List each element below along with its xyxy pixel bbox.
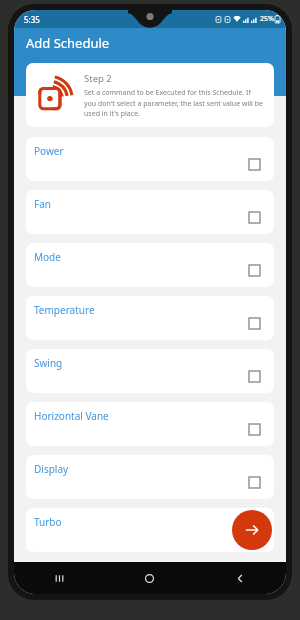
- button[interactable]: Horizontal Vane checkbox: [245, 420, 263, 438]
- button[interactable]: Horizontal Vane: [26, 402, 274, 446]
- button[interactable]: Mode: [26, 243, 274, 287]
- staticText: Step 2: [84, 72, 112, 85]
- button[interactable]: Fan: [26, 190, 274, 234]
- button[interactable]: Fan checkbox: [245, 208, 263, 226]
- staticText: Power: [34, 144, 64, 158]
- staticText: Set a command to be Executed for this Sc…: [84, 88, 264, 118]
- staticText: Display: [34, 462, 69, 476]
- button[interactable]: Power: [26, 137, 274, 181]
- staticText: Mode: [34, 250, 61, 264]
- button[interactable]: Temperature: [26, 296, 274, 340]
- staticText: 5:35: [24, 14, 40, 25]
- button[interactable]: Temperature checkbox: [245, 314, 263, 332]
- button[interactable]: Mode checkbox: [245, 261, 263, 279]
- button[interactable]: Turbo: [26, 508, 274, 552]
- button[interactable]: Next: [232, 510, 272, 550]
- button[interactable]: Back: [195, 562, 286, 594]
- staticText: 25%: [260, 14, 274, 24]
- button[interactable]: Step 2: [26, 63, 274, 127]
- staticText: Horizontal Vane: [34, 409, 109, 423]
- staticText: Turbo: [34, 515, 62, 529]
- staticText: Temperature: [34, 303, 95, 317]
- button[interactable]: Home: [104, 562, 195, 594]
- button[interactable]: Swing checkbox: [245, 367, 263, 385]
- button[interactable]: Power checkbox: [245, 155, 263, 173]
- button[interactable]: Turbo checkbox: [245, 526, 263, 544]
- staticText: Add Schedule: [26, 34, 110, 52]
- button[interactable]: Swing: [26, 349, 274, 393]
- button[interactable]: Display: [26, 455, 274, 499]
- staticText: Swing: [34, 356, 63, 370]
- button[interactable]: Recent apps: [14, 562, 104, 594]
- button[interactable]: Display checkbox: [245, 473, 263, 491]
- staticText: Fan: [34, 197, 51, 211]
